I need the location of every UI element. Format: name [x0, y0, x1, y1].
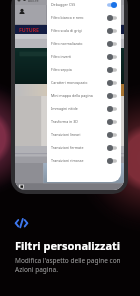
staticText: Modifica l'aspetto delle pagine con Azio…	[15, 256, 121, 274]
staticText: Filtro bianco e nero	[51, 15, 107, 20]
button[interactable]: Filtro inverti	[47, 50, 121, 63]
button[interactable]: Filtro bianco e nero	[47, 11, 121, 24]
staticText: Filtro normalizzato	[51, 41, 107, 46]
button[interactable]: Mini mappa della pagina	[47, 89, 121, 102]
staticText: Transizioni rimosse	[51, 158, 107, 163]
staticText: Filtro scala di grigi	[51, 28, 107, 33]
staticText: Filtri personalizzati	[15, 238, 121, 253]
staticText: Trasforma in 3D	[51, 119, 107, 124]
button[interactable]: Filtro scala di grigi	[47, 24, 121, 37]
button[interactable]: Transizioni fermate	[47, 141, 121, 154]
button[interactable]	[15, 218, 28, 228]
staticText: Filtro seppia	[51, 67, 107, 72]
button[interactable]: Debugger CSS	[47, 0, 121, 11]
button[interactable]: Trasforma in 3D	[47, 115, 121, 128]
button[interactable]: Filtro seppia	[47, 63, 121, 76]
staticText: bbc.re	[28, 0, 39, 3]
staticText: Mini mappa della pagina	[51, 93, 107, 98]
button[interactable]: Filtro normalizzato	[47, 37, 121, 50]
button[interactable]: Transizioni rimosse	[47, 154, 121, 167]
staticText: Filtro inverti	[51, 54, 107, 59]
staticText: Caratteri monospazio	[51, 80, 107, 85]
button[interactable]: Transizioni lineari	[47, 128, 121, 141]
button[interactable]: Caratteri monospazio	[47, 76, 121, 89]
staticText: Transizioni lineari	[51, 132, 107, 137]
staticText: Transizioni fermate	[51, 145, 107, 150]
staticText: Immagini nitide	[51, 106, 107, 111]
staticText: Debugger CSS	[51, 2, 107, 7]
staticText: FUTURE	[19, 26, 39, 33]
button[interactable]: Immagini nitide	[47, 102, 121, 115]
